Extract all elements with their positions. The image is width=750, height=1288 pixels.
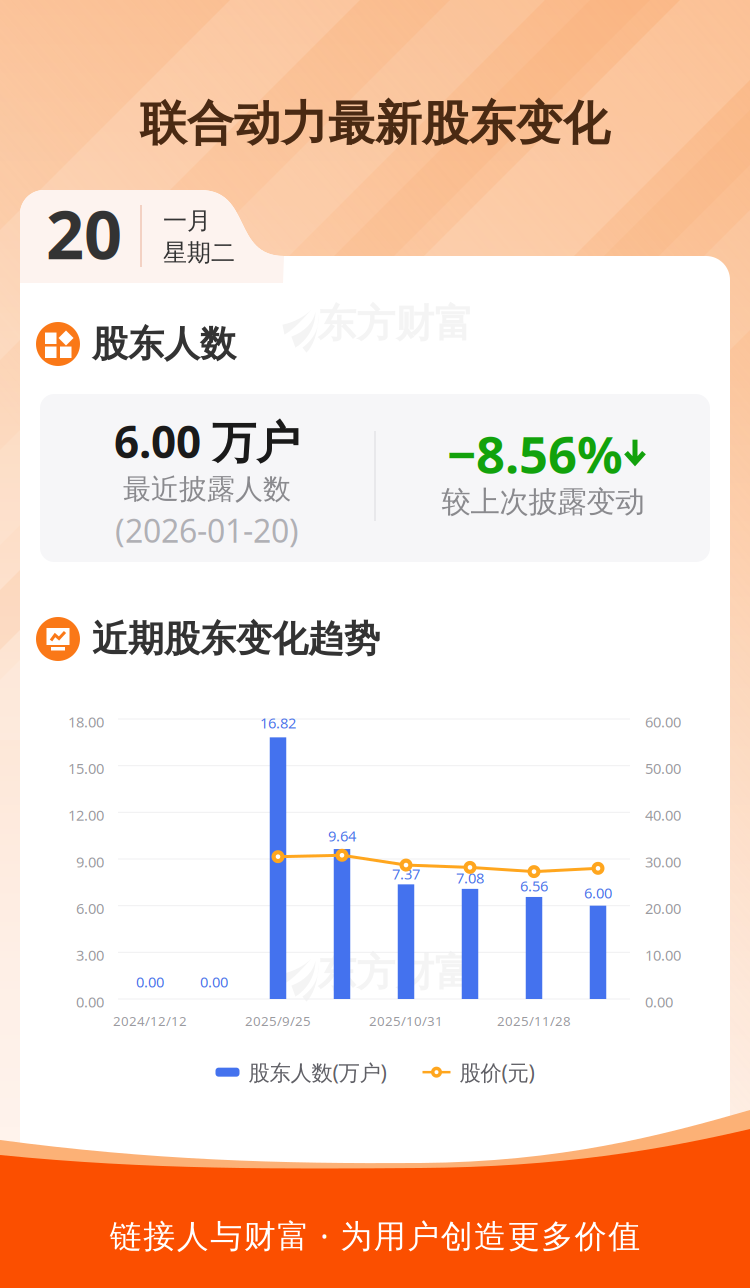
staticText: 6.00 — [76, 899, 104, 918]
staticText: 股东人数(万户) — [248, 1058, 386, 1086]
staticText: 最近披露人数 — [123, 472, 291, 506]
staticText: 0.00 — [645, 992, 673, 1011]
staticText: 联合动力最新股东变化 — [140, 95, 610, 152]
staticText: 9.00 — [76, 852, 104, 871]
staticText: 50.00 — [645, 759, 681, 778]
staticText: 7.08 — [456, 868, 484, 887]
staticText: 9.64 — [328, 826, 356, 845]
staticText: 星期二 — [163, 238, 235, 267]
staticText: 0.00 — [136, 972, 164, 991]
staticText: −8.56% — [447, 420, 623, 487]
staticText: 0.00 — [200, 972, 228, 991]
staticText: 2025/10/31 — [369, 1012, 443, 1030]
staticText: 16.82 — [260, 713, 296, 732]
staticText: 近期股东变化趋势 — [92, 617, 380, 661]
staticText: 2024/12/12 — [113, 1012, 187, 1030]
staticText: 6.56 — [520, 876, 548, 895]
staticText: 18.00 — [68, 712, 104, 731]
staticText: 东方财富 — [318, 300, 474, 347]
staticText: 7.37 — [392, 864, 420, 883]
staticText: 较上次披露变动 — [441, 484, 644, 520]
staticText: 一月 — [163, 206, 211, 235]
staticText: 10.00 — [645, 945, 681, 965]
staticText: 12.00 — [68, 805, 104, 825]
staticText: 60.00 — [645, 712, 681, 731]
staticText: (2026-01-20) — [115, 509, 299, 551]
staticText: 东方财富 — [318, 949, 474, 996]
staticText: 40.00 — [645, 805, 681, 825]
staticText: 30.00 — [645, 852, 681, 871]
staticText: 股价(元) — [459, 1058, 534, 1086]
staticText: 15.00 — [68, 759, 104, 778]
staticText: 2025/9/25 — [245, 1012, 311, 1030]
staticText: 6.00 — [584, 883, 612, 902]
staticText: 20.00 — [645, 899, 681, 918]
staticText: 3.00 — [76, 945, 104, 965]
staticText: 0.00 — [76, 992, 104, 1011]
staticText: 链接人与财富 · 为用户创造更多价值 — [110, 1214, 640, 1256]
staticText: 6.00 万户 — [114, 412, 300, 470]
staticText: 2025/11/28 — [497, 1012, 571, 1030]
staticText: 股东人数 — [92, 322, 236, 366]
staticText: 20 — [46, 189, 122, 277]
